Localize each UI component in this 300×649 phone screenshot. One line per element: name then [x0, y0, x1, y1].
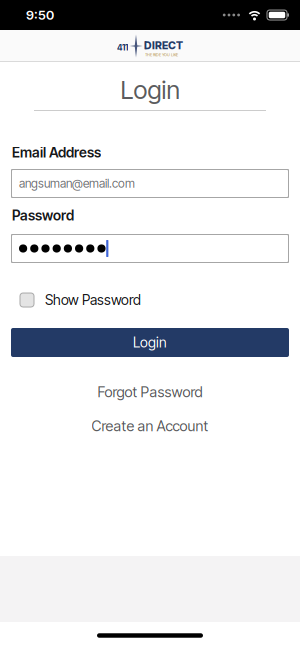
- staticText: Create an Account: [91, 417, 208, 435]
- button[interactable]: angsuman@email.com: [11, 169, 289, 198]
- button[interactable]: Password: [11, 234, 289, 263]
- button[interactable]: Login: [11, 328, 289, 357]
- button[interactable]: Forgot Password: [97, 385, 202, 399]
- staticText: Login: [133, 334, 167, 351]
- button[interactable]: Create an Account: [91, 419, 208, 433]
- staticText: 411: [117, 42, 128, 53]
- staticText: THE RIDE YOU LIKE: [145, 52, 178, 57]
- button[interactable]: Show Password: [0, 293, 300, 307]
- staticText: angsuman@email.com: [19, 176, 135, 191]
- staticText: Password: [12, 207, 74, 224]
- staticText: Login: [120, 75, 179, 105]
- staticText: Email Address: [12, 144, 101, 161]
- staticText: 9:50: [26, 7, 54, 23]
- staticText: Show Password: [45, 291, 141, 308]
- staticText: Forgot Password: [97, 383, 202, 401]
- staticText: DIRECT: [144, 39, 183, 52]
